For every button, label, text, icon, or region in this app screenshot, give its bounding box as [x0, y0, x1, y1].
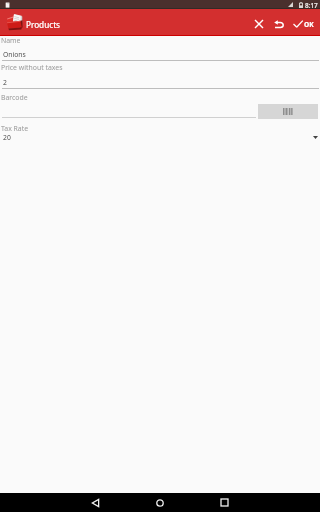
button[interactable]: Barcode — [0, 91, 256, 120]
staticText: Price without taxes — [1, 63, 63, 72]
staticText: OK — [304, 20, 314, 29]
button[interactable]: Products — [0, 9, 65, 35]
button[interactable]: Back — [81, 493, 109, 512]
button[interactable]: Scan barcode — [258, 104, 318, 119]
staticText: 2 — [3, 78, 7, 87]
button[interactable]: Tax Rate — [0, 121, 320, 144]
button[interactable]: Recents — [210, 493, 238, 512]
staticText: Barcode — [1, 93, 28, 102]
button[interactable]: Close — [250, 11, 268, 37]
staticText: Products — [26, 19, 61, 30]
button[interactable]: OK — [291, 11, 316, 37]
button[interactable]: Home — [146, 493, 174, 512]
staticText: 20 — [3, 133, 11, 142]
staticText: Onions — [3, 50, 26, 59]
button[interactable]: Name — [0, 34, 320, 62]
button[interactable]: Price without taxes — [0, 61, 320, 90]
staticText: 8:17 — [305, 1, 318, 10]
button[interactable]: Undo — [269, 11, 288, 37]
staticText: Tax Rate — [1, 124, 29, 133]
staticText: Name — [1, 36, 21, 45]
